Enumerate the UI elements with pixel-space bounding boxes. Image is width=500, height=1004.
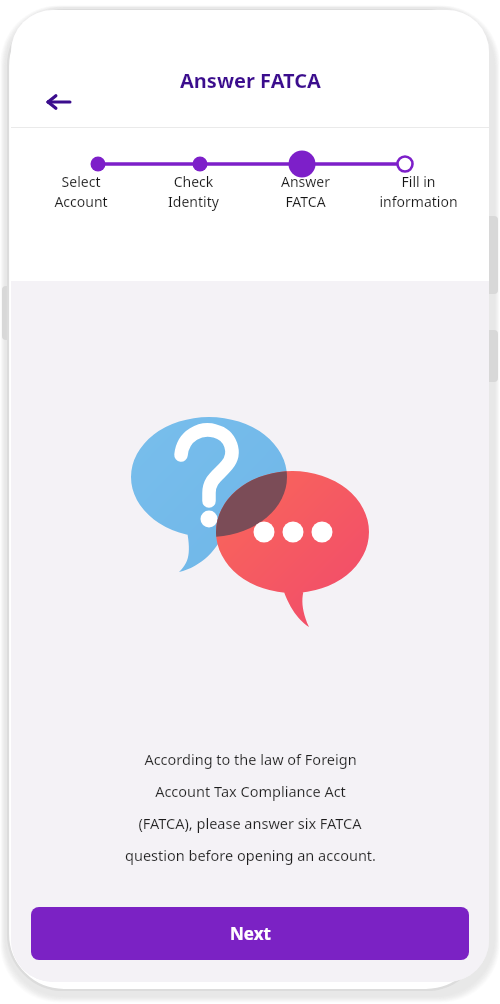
button[interactable]: Next	[31, 907, 469, 960]
staticText: Select Account	[54, 172, 108, 212]
staticText: Check Identity	[168, 172, 219, 212]
staticText: According to the law of Foreign	[144, 749, 357, 769]
staticText: Next	[230, 922, 271, 945]
button[interactable]: Fill in information	[362, 172, 475, 212]
button[interactable]: Back	[35, 78, 83, 126]
staticText: (FATCA), please answer six FATCA	[138, 813, 362, 833]
staticText: Fill in information	[379, 172, 458, 212]
staticText: Account Tax Compliance Act	[155, 781, 346, 801]
button[interactable]: Check Identity	[137, 172, 249, 212]
button[interactable]: Select Account	[25, 172, 137, 212]
button[interactable]: Answer FATCA	[249, 172, 362, 212]
staticText: question before opening an account.	[125, 845, 376, 865]
staticText: Answer FATCA	[180, 67, 321, 94]
staticText: Answer FATCA	[281, 172, 330, 212]
